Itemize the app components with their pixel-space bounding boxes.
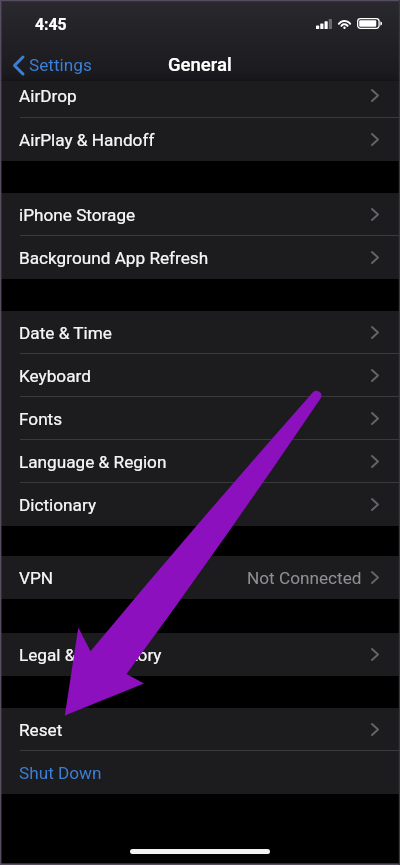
staticText: Background App Refresh [19,248,209,268]
button[interactable]: Back to Settings [13,55,92,75]
button[interactable]: Fonts [0,397,400,440]
staticText: VPN [19,568,54,588]
staticText: Date & Time [19,323,112,343]
button[interactable]: Shut Down [0,751,400,794]
button[interactable]: Language & Region [0,440,400,483]
staticText: AirPlay & Handoff [19,130,155,150]
button[interactable]: Reset [0,708,400,751]
button[interactable]: AirDrop [0,81,400,118]
staticText: Not Connected [247,568,362,588]
staticText: 4:45 [35,15,67,34]
staticText: iPhone Storage [19,205,136,225]
staticText: Keyboard [19,366,91,386]
button[interactable]: Legal & Regulatory [0,633,400,676]
staticText: AirDrop [19,86,77,106]
staticText: Settings [29,55,92,75]
button[interactable]: AirPlay & Handoff [0,118,400,161]
button[interactable]: Dictionary [0,483,400,526]
staticText: Shut Down [19,763,102,783]
staticText: General [168,54,232,76]
staticText: Reset [19,720,63,740]
button[interactable]: VPN [0,556,400,599]
staticText: Legal & Regulatory [19,645,162,665]
staticText: Language & Region [19,452,167,472]
button[interactable]: Date & Time [0,311,400,354]
button[interactable]: Background App Refresh [0,236,400,279]
button[interactable]: Keyboard [0,354,400,397]
staticText: Fonts [19,409,63,429]
button[interactable]: iPhone Storage [0,193,400,236]
staticText: Dictionary [19,495,97,515]
